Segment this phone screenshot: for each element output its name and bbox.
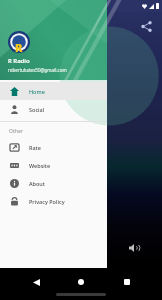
staticText: Other — [9, 128, 23, 135]
staticText: About — [29, 180, 45, 187]
staticText: Social — [29, 106, 45, 113]
button[interactable]: Home — [0, 82, 107, 100]
button[interactable]: Rate — [0, 138, 107, 156]
button[interactable]: Back — [26, 272, 46, 292]
button[interactable]: Privacy Policy — [0, 192, 107, 210]
button[interactable]: Recents — [117, 272, 137, 292]
button[interactable]: Share — [136, 16, 156, 36]
staticText: radio station — [14, 107, 38, 112]
button[interactable]: About — [0, 174, 107, 192]
button[interactable]: Website — [0, 156, 107, 174]
staticText: Privacy Policy — [29, 198, 65, 205]
staticText: Home — [29, 88, 45, 95]
staticText: R — [56, 95, 61, 105]
button[interactable]: Volume — [126, 240, 142, 256]
staticText: Where's your — [14, 96, 54, 104]
staticText: R — [15, 40, 23, 55]
staticText: robertukates50@gmail.com — [8, 67, 67, 73]
staticText: Website — [29, 162, 51, 169]
staticText: Rate — [29, 144, 41, 151]
staticText: R Radio — [8, 57, 30, 65]
button[interactable]: Social — [0, 100, 107, 118]
button[interactable]: Home — [71, 272, 91, 292]
